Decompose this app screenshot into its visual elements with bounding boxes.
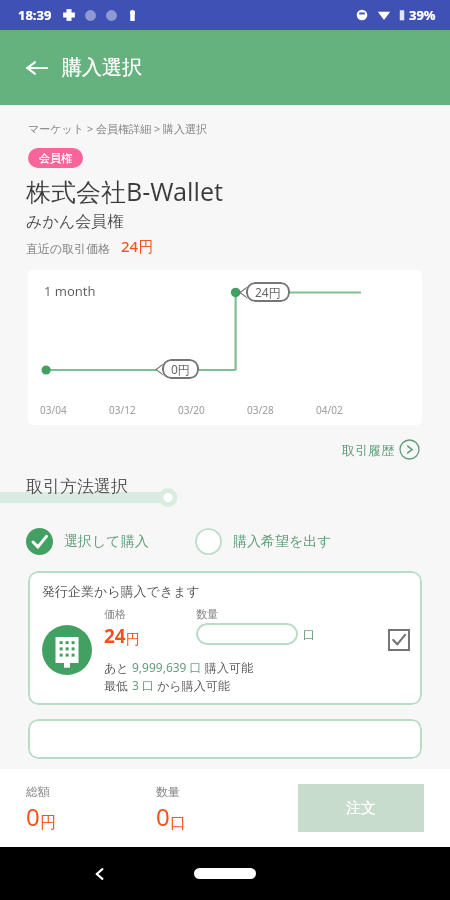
staticText: マーケット > 会員権詳細 > 購入選択 (28, 121, 208, 136)
staticText: 円 (126, 631, 140, 649)
staticText: 口 (170, 813, 186, 833)
button[interactable]: Back (20, 51, 54, 85)
staticText: 株式会社B-Wallet (26, 174, 224, 208)
staticText: 会員権 (39, 151, 72, 165)
staticText: 購入選択 (62, 55, 142, 80)
staticText: から購入可能 (154, 677, 230, 693)
button[interactable]: 発行企業から購入できます (28, 571, 422, 705)
staticText: 数量 (156, 784, 180, 799)
staticText: 価格 (104, 607, 126, 621)
button[interactable] (28, 719, 422, 759)
button[interactable]: 購入希望を出す (195, 528, 332, 555)
staticText: 18:39 (18, 6, 52, 24)
staticText: あと (104, 659, 132, 675)
button[interactable]: Back (90, 864, 110, 884)
staticText: 購入希望を出す (233, 533, 332, 551)
staticText: 取引履歴 (342, 442, 394, 458)
staticText: 口 (303, 627, 315, 642)
staticText: 0円 (171, 361, 190, 377)
button[interactable]: 選択して購入 (26, 528, 149, 555)
staticText: 39% (409, 6, 436, 24)
staticText: 数量 (196, 607, 218, 621)
button[interactable]: Select offer (388, 629, 410, 651)
staticText: 0 (156, 800, 170, 833)
staticText: 03/04 (40, 403, 67, 417)
staticText: 03/12 (109, 403, 136, 417)
staticText: 注文 (346, 799, 376, 818)
staticText: 03/20 (178, 403, 205, 417)
staticText: 1 month (44, 282, 96, 300)
staticText: 24 (104, 623, 126, 649)
staticText: 購入可能 (202, 659, 254, 675)
button[interactable]: 注文 (298, 784, 424, 832)
staticText: 最低 (104, 677, 132, 693)
button[interactable] (196, 623, 298, 645)
staticText: 9,999,639 口 (132, 659, 202, 675)
staticText: 直近の取引価格 (26, 241, 111, 256)
staticText: 発行企業から購入できます (42, 583, 200, 599)
staticText: みかん会員権 (26, 212, 124, 232)
staticText: 円 (40, 813, 56, 833)
staticText: 0 (26, 800, 40, 833)
staticText: 3 口 (132, 677, 154, 693)
staticText: 04/02 (316, 403, 343, 417)
staticText: 総額 (26, 784, 50, 799)
staticText: 24円 (255, 284, 281, 300)
button[interactable]: Home (194, 868, 256, 879)
button[interactable]: 取引履歴 (338, 435, 424, 464)
staticText: 取引方法選択 (26, 476, 128, 497)
staticText: 選択して購入 (64, 533, 149, 551)
staticText: 03/28 (247, 403, 274, 417)
staticText: 24円 (121, 236, 154, 256)
